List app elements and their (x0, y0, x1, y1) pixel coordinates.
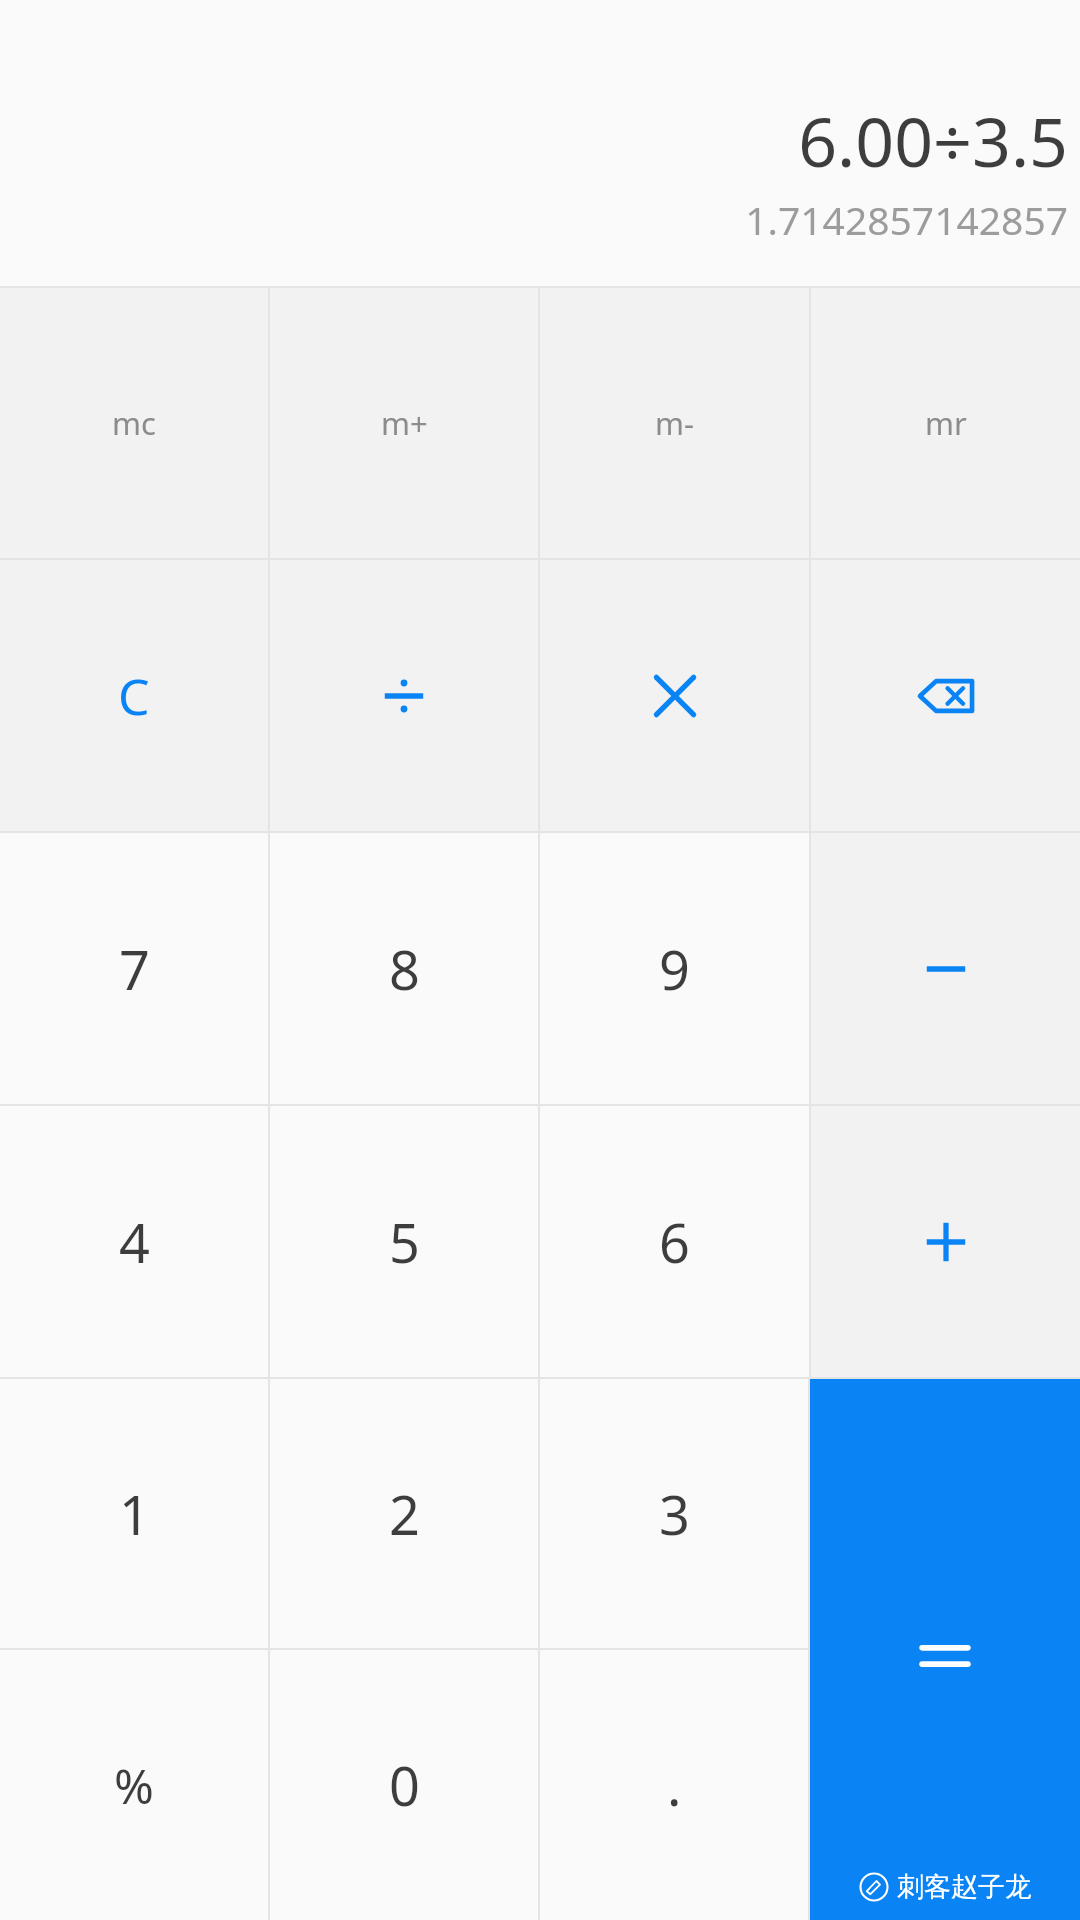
button[interactable]: Divide (270, 560, 538, 831)
button[interactable]: Multiply (540, 560, 809, 831)
button[interactable]: C (0, 560, 268, 831)
button[interactable]: m- (540, 288, 809, 558)
staticText: 1 (119, 1477, 150, 1551)
staticText: m- (655, 402, 694, 444)
button[interactable]: 4 (0, 1106, 268, 1377)
button[interactable]: m+ (270, 288, 538, 558)
staticText: mr (925, 402, 967, 444)
button[interactable]: 6 (540, 1106, 809, 1377)
button[interactable]: mr (811, 288, 1080, 558)
staticText: 6.00÷3.5 (798, 94, 1068, 187)
staticText: 5 (389, 1205, 420, 1279)
staticText: 8 (389, 932, 420, 1006)
staticText: m+ (381, 402, 428, 444)
staticText: 0 (389, 1748, 420, 1822)
button[interactable]: Minus (811, 833, 1080, 1104)
staticText: mc (112, 402, 156, 444)
button[interactable]: Plus (811, 1106, 1080, 1377)
button[interactable]: Equals (810, 1379, 1080, 1920)
staticText: 刺客赵子龙 (897, 1870, 1032, 1904)
staticText: 3 (659, 1477, 690, 1551)
staticText: 4 (119, 1205, 150, 1279)
button[interactable]: 5 (270, 1106, 538, 1377)
button[interactable]: 3 (540, 1379, 808, 1648)
staticText: % (114, 1753, 154, 1818)
staticText: 1.7142857142857 (745, 193, 1068, 246)
button[interactable]: 0 (270, 1650, 538, 1920)
button[interactable]: 2 (270, 1379, 538, 1648)
staticText: . (667, 1748, 682, 1822)
button[interactable]: % (0, 1650, 268, 1920)
button[interactable]: 8 (270, 833, 538, 1104)
button[interactable]: . (540, 1650, 808, 1920)
button[interactable]: 1 (0, 1379, 268, 1648)
button[interactable]: mc (0, 288, 268, 558)
staticText: 2 (389, 1477, 420, 1551)
button[interactable]: 7 (0, 833, 268, 1104)
button[interactable]: Backspace (811, 560, 1080, 831)
staticText: 6 (659, 1205, 690, 1279)
staticText: 9 (659, 932, 690, 1006)
staticText: 7 (119, 932, 150, 1006)
staticText: C (118, 662, 150, 730)
button[interactable]: 9 (540, 833, 809, 1104)
